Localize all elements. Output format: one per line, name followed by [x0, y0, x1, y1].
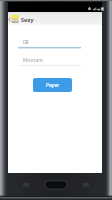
staticText: Sexy	[21, 16, 34, 23]
staticText: 08	[23, 39, 29, 46]
staticText: Payer	[46, 82, 60, 89]
button[interactable]: Numero field	[18, 46, 81, 48]
button[interactable]: Payer	[33, 78, 72, 92]
button[interactable]: Navigate up	[8, 12, 11, 26]
staticText: Montant	[23, 57, 44, 64]
button[interactable]: App icon	[11, 15, 19, 23]
